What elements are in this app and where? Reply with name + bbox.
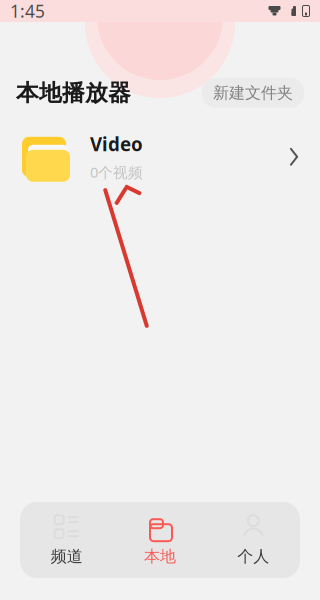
button[interactable]: Video	[0, 122, 320, 192]
staticText: 频道	[51, 547, 83, 566]
button[interactable]: 本地	[113, 502, 207, 578]
button[interactable]: 个人	[207, 502, 300, 578]
staticText: Video	[90, 132, 143, 156]
staticText: 0个视频	[90, 162, 143, 182]
staticText: 本地	[144, 547, 176, 566]
staticText: 新建文件夹	[213, 83, 293, 103]
staticText: 本地播放器	[16, 79, 131, 107]
staticText: 1:45	[10, 0, 45, 22]
button[interactable]: 新建文件夹	[202, 78, 304, 108]
button[interactable]: 频道	[20, 502, 113, 578]
staticText: 个人	[237, 547, 269, 566]
